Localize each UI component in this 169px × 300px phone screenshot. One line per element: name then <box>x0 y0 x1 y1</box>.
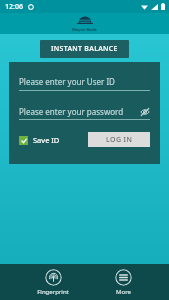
staticText: Save ID <box>33 135 60 145</box>
staticText: LOG IN <box>106 135 133 145</box>
staticText: More <box>116 288 131 296</box>
button[interactable]: More <box>107 267 140 298</box>
button[interactable]: Please enter your password <box>19 106 150 120</box>
staticText: Mayne Bank <box>72 27 97 32</box>
button[interactable]: Please enter your User ID <box>19 76 150 91</box>
staticText: Fingerprint <box>37 288 69 296</box>
button[interactable]: LOG IN <box>88 132 150 147</box>
staticText: INSTANT BALANCE <box>51 44 118 54</box>
button[interactable]: Save ID <box>19 135 60 145</box>
button[interactable]: Fingerprint <box>29 267 77 298</box>
button[interactable]: INSTANT BALANCE <box>40 40 129 58</box>
staticText: Please enter your password <box>19 106 124 117</box>
button[interactable]: Show password <box>139 106 150 117</box>
staticText: Please enter your User ID <box>19 76 115 87</box>
staticText: 12:06 <box>5 2 23 12</box>
